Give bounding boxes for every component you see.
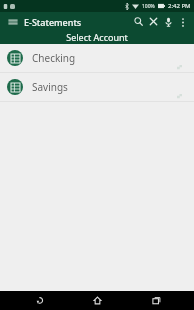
staticText: 100%: [142, 3, 155, 10]
button[interactable]: Recent apps: [136, 291, 176, 310]
button[interactable]: More options: [176, 15, 190, 29]
button[interactable]: Voice search: [161, 14, 176, 29]
button[interactable]: Home: [77, 291, 117, 310]
button[interactable]: Savings: [0, 73, 194, 101]
button[interactable]: Open navigation drawer: [6, 15, 20, 29]
staticText: Savings: [32, 80, 68, 94]
button[interactable]: Clear: [146, 14, 161, 29]
button[interactable]: Checking: [0, 44, 194, 72]
staticText: E-Statements: [24, 16, 82, 28]
staticText: Select Account: [66, 31, 128, 43]
staticText: 2:42 PM: [168, 2, 191, 10]
button[interactable]: Search: [131, 14, 146, 29]
button[interactable]: Back: [19, 291, 59, 310]
staticText: Checking: [32, 51, 76, 65]
